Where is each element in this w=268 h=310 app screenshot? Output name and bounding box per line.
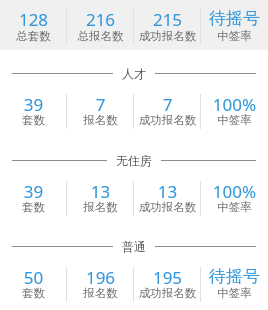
staticText: 成功报名数 <box>134 29 201 43</box>
button[interactable]: 128 <box>0 0 67 45</box>
staticText: 39 <box>0 93 67 116</box>
button[interactable]: 待摇号 <box>201 245 268 302</box>
staticText: 报名数 <box>67 286 134 300</box>
staticText: 128 <box>0 8 67 31</box>
button[interactable]: 50 <box>0 245 67 302</box>
staticText: 7 <box>67 93 134 116</box>
staticText: 195 <box>134 266 201 289</box>
staticText: 196 <box>67 266 134 289</box>
staticText: 中签率 <box>201 29 268 43</box>
staticText: 成功报名数 <box>134 286 201 300</box>
staticText: 报名数 <box>67 200 134 214</box>
staticText: 13 <box>134 180 201 203</box>
button[interactable]: 100% <box>201 72 268 129</box>
staticText: 中签率 <box>201 286 268 300</box>
button[interactable]: 13 <box>67 159 134 216</box>
staticText: 50 <box>0 266 67 289</box>
button[interactable]: 7 <box>134 72 201 129</box>
staticText: 套数 <box>0 200 67 214</box>
staticText: 无住房 <box>116 153 152 168</box>
button[interactable]: 13 <box>134 159 201 216</box>
staticText: 人才 <box>122 66 146 81</box>
staticText: 中签率 <box>201 200 268 214</box>
staticText: 13 <box>67 180 134 203</box>
staticText: 成功报名数 <box>134 113 201 127</box>
staticText: 待摇号 <box>201 266 268 287</box>
staticText: 100% <box>201 180 268 203</box>
staticText: 100% <box>201 93 268 116</box>
staticText: 总套数 <box>0 29 67 43</box>
staticText: 套数 <box>0 286 67 300</box>
button[interactable]: 215 <box>134 0 201 45</box>
button[interactable]: 39 <box>0 72 67 129</box>
staticText: 待摇号 <box>201 8 268 29</box>
staticText: 总报名数 <box>67 29 134 43</box>
button[interactable]: 216 <box>67 0 134 45</box>
button[interactable]: 待摇号 <box>201 0 268 45</box>
staticText: 215 <box>134 8 201 31</box>
staticText: 216 <box>67 8 134 31</box>
staticText: 普通 <box>122 239 146 254</box>
staticText: 成功报名数 <box>134 200 201 214</box>
button[interactable]: 100% <box>201 159 268 216</box>
staticText: 套数 <box>0 113 67 127</box>
button[interactable]: 39 <box>0 159 67 216</box>
button[interactable]: 196 <box>67 245 134 302</box>
button[interactable]: 7 <box>67 72 134 129</box>
staticText: 7 <box>134 93 201 116</box>
staticText: 39 <box>0 180 67 203</box>
button[interactable]: 195 <box>134 245 201 302</box>
staticText: 报名数 <box>67 113 134 127</box>
staticText: 中签率 <box>201 113 268 127</box>
